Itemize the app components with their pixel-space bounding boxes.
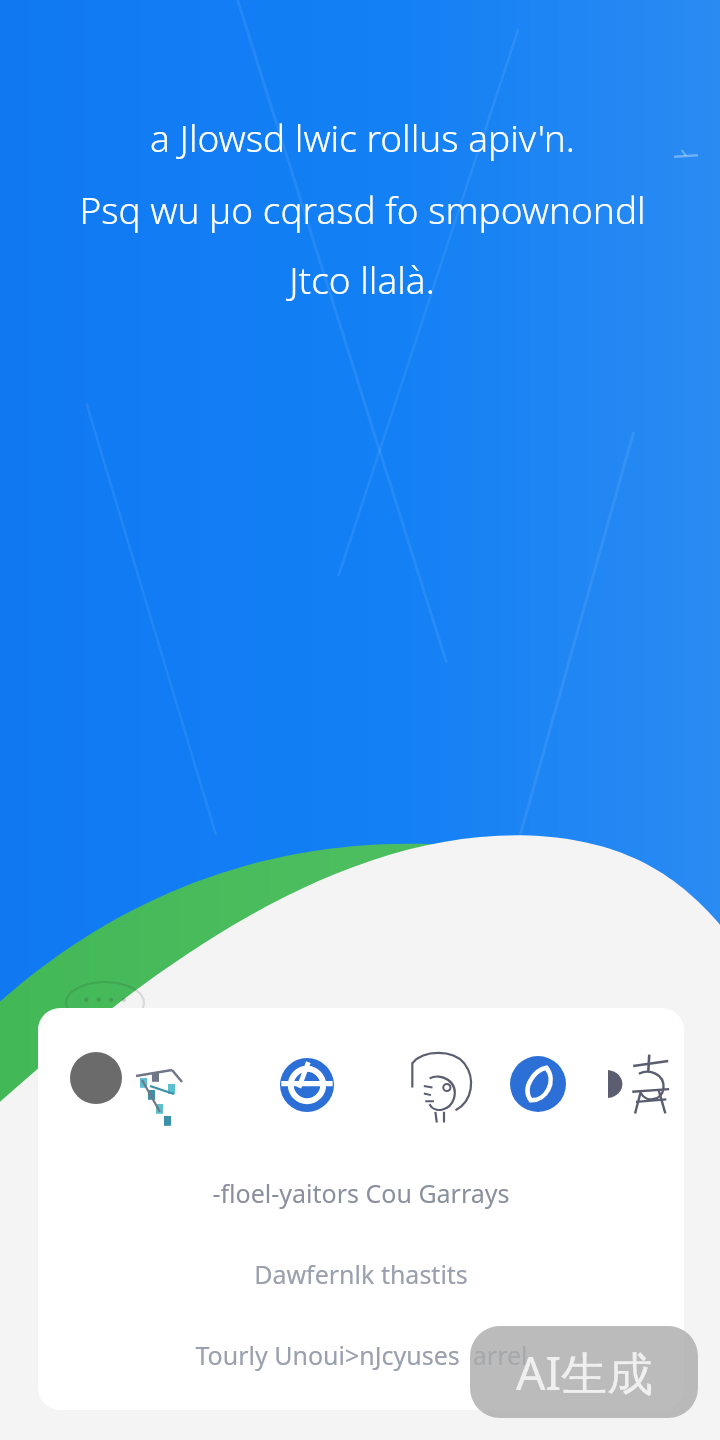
button[interactable]: Symbol [608, 1052, 672, 1116]
staticText: Jtco llalà. [289, 254, 435, 304]
staticText: -floel-yaitors Cou Garrays [212, 1176, 510, 1210]
staticText: Tourly Unoui>nJcyuses arrel [195, 1338, 528, 1372]
button[interactable]: Profile [38, 1008, 684, 1410]
button[interactable]: Profile [68, 1052, 178, 1116]
staticText: Psq wu µo cqrasd fo smpownondl [79, 184, 646, 234]
staticText: Dawfernlk thastits [254, 1257, 468, 1291]
button[interactable]: Globe [280, 1058, 334, 1112]
staticText: AI生成 [516, 1341, 653, 1404]
button[interactable]: Sketch [408, 1048, 480, 1124]
staticText: a Jlowsd lwic rollus apiv'n. [150, 112, 575, 162]
button[interactable]: Leaf [510, 1056, 566, 1112]
